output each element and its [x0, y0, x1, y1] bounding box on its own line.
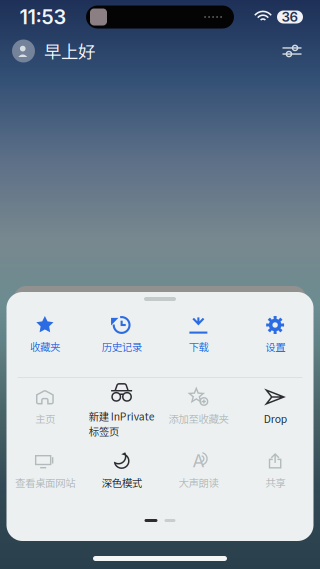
staticText: Drop [264, 411, 287, 426]
button[interactable]: Settings [272, 34, 312, 68]
staticText: 共享 [265, 475, 285, 490]
button[interactable]: 深色模式 [83, 452, 160, 500]
staticText: 设置 [265, 339, 285, 354]
staticText: 添加至收藏夹 [168, 411, 228, 426]
button[interactable]: 收藏夹 [6, 316, 83, 364]
staticText: 深色模式 [102, 475, 142, 490]
staticText: A [192, 450, 204, 471]
staticText: 大声朗读 [178, 475, 218, 490]
staticText: 下载 [188, 339, 208, 354]
staticText: 早上好 [44, 38, 95, 64]
button[interactable]: 设置 [237, 316, 314, 364]
staticText: 历史记录 [102, 339, 142, 354]
staticText: 收藏夹 [30, 339, 60, 354]
button[interactable]: 下载 [160, 316, 237, 364]
button[interactable]: Drop [237, 388, 314, 436]
button[interactable]: 共享 [237, 452, 314, 500]
button[interactable]: 历史记录 [83, 316, 160, 364]
button[interactable]: 查看桌面网站 [6, 452, 83, 500]
staticText: 36 [281, 9, 298, 25]
staticText: 11:53 [19, 5, 66, 29]
button[interactable]: A [160, 452, 237, 500]
button[interactable]: 新建 InPrivate 标签页 [83, 388, 160, 436]
button[interactable]: 添加至收藏夹 [160, 388, 237, 436]
staticText: 主页 [35, 411, 55, 426]
button[interactable]: 主页 [6, 388, 83, 436]
button[interactable]: 早上好 [0, 34, 95, 68]
staticText: 查看桌面网站 [15, 475, 75, 490]
staticText: 新建 InPrivate 标签页 [89, 408, 155, 438]
